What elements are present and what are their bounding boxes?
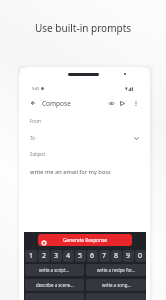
staticText: From (30, 118, 41, 124)
staticText: write a song... (102, 282, 131, 288)
button[interactable]: 4 (63, 250, 74, 262)
staticText: To (30, 135, 35, 141)
staticText: describe a scene... (36, 282, 74, 288)
button[interactable]: 2 (38, 250, 50, 262)
staticText: 1 (29, 251, 34, 261)
staticText: 6 (90, 251, 95, 261)
staticText: Compose (42, 99, 71, 108)
button[interactable]: 7 (99, 250, 110, 262)
staticText: 9:43 (32, 86, 40, 91)
staticText: 2 (42, 251, 47, 261)
staticText: 3 (54, 251, 59, 261)
staticText: write a recipe for... (97, 267, 135, 273)
staticText: write a script... (39, 267, 70, 273)
button[interactable]: 8 (111, 250, 122, 262)
button[interactable]: 9 (123, 250, 134, 262)
button[interactable]: write a recipe for... (86, 264, 146, 276)
button[interactable]: describe a scene... (25, 279, 84, 291)
button[interactable]: write a song... (86, 279, 146, 291)
staticText: 0 (138, 251, 143, 261)
staticText: 7 (102, 251, 107, 261)
button[interactable]: 5 (75, 250, 86, 262)
staticText: 5 (78, 251, 83, 261)
staticText: Use built-in prompts (35, 21, 132, 35)
button[interactable]: write a script... (25, 264, 84, 276)
staticText: 8 (114, 251, 119, 261)
staticText: write me an email for my boss (30, 168, 111, 176)
button[interactable]: 0 (135, 250, 146, 262)
staticText: 4 (66, 251, 71, 261)
staticText: Subject (30, 151, 46, 157)
staticText: 9 (126, 251, 131, 261)
staticText: Generate Response (38, 237, 132, 244)
button[interactable]: Attach (106, 95, 116, 111)
button[interactable]: Generate Response (38, 234, 132, 246)
button[interactable]: 6 (87, 250, 98, 262)
button[interactable]: Back (27, 95, 39, 111)
button[interactable]: 3 (51, 250, 62, 262)
button[interactable]: More options (131, 95, 140, 111)
button[interactable]: 1 (25, 250, 37, 262)
button[interactable]: Send (117, 95, 127, 111)
